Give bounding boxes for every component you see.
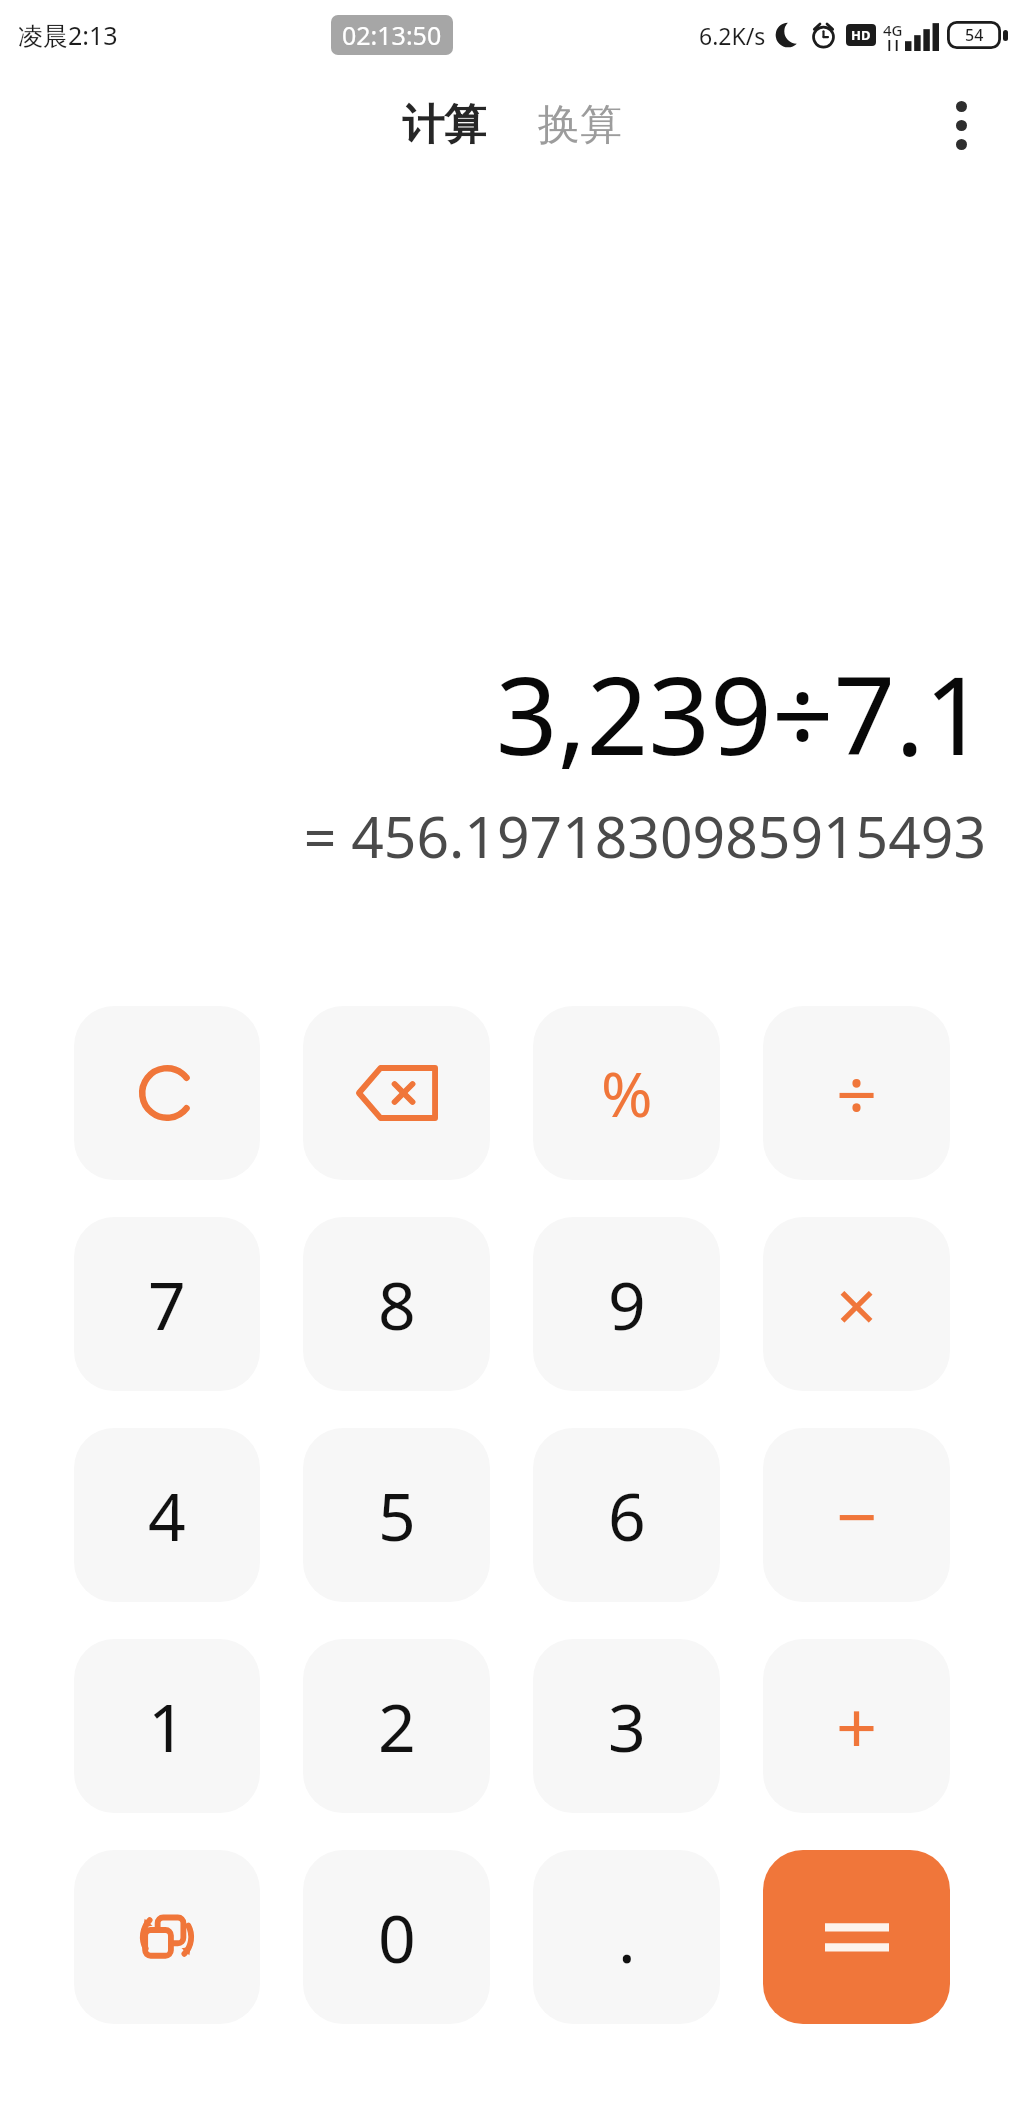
staticText: .	[618, 1892, 636, 1982]
button[interactable]: Clear	[74, 1006, 260, 1180]
button[interactable]: −	[763, 1428, 950, 1602]
staticText: 9	[608, 1259, 646, 1349]
staticText: 计算	[402, 99, 486, 152]
staticText: 4	[148, 1470, 186, 1560]
button[interactable]: 5	[303, 1428, 490, 1602]
staticText: %	[601, 1051, 653, 1135]
staticText: 8	[378, 1259, 416, 1349]
button[interactable]: 8	[303, 1217, 490, 1391]
button[interactable]: Unit conversion	[74, 1850, 260, 2024]
button[interactable]: 9	[533, 1217, 720, 1391]
button[interactable]: 7	[74, 1217, 260, 1391]
button[interactable]: 换算	[524, 89, 636, 162]
button[interactable]: 6	[533, 1428, 720, 1602]
button[interactable]: .	[533, 1850, 720, 2024]
button[interactable]: 1	[74, 1639, 260, 1813]
staticText: 7	[148, 1259, 186, 1349]
staticText: 凌晨2:13	[18, 18, 118, 52]
staticText: 4G	[883, 20, 903, 40]
staticText: HD	[851, 26, 871, 44]
button[interactable]: 0	[303, 1850, 490, 2024]
staticText: 3,239÷7.1	[495, 640, 986, 787]
staticText: 02:13:50	[342, 18, 442, 52]
button[interactable]: 3	[533, 1639, 720, 1813]
staticText: ×	[836, 1255, 878, 1353]
staticText: 0	[378, 1892, 416, 1982]
button[interactable]: +	[763, 1639, 950, 1813]
staticText: 5	[378, 1470, 416, 1560]
staticText: 6	[608, 1470, 646, 1560]
staticText: ÷	[836, 1044, 878, 1142]
staticText: 1	[148, 1681, 186, 1771]
staticText: 换算	[538, 99, 622, 152]
staticText: 3	[608, 1681, 646, 1771]
button[interactable]: Delete	[303, 1006, 490, 1180]
button[interactable]: %	[533, 1006, 720, 1180]
staticText: −	[836, 1466, 878, 1564]
staticText: = 456.1971830985915493	[303, 797, 986, 875]
button[interactable]: ÷	[763, 1006, 950, 1180]
button[interactable]: 2	[303, 1639, 490, 1813]
staticText: 2	[378, 1681, 416, 1771]
staticText: 6.2K/s	[699, 20, 766, 51]
button[interactable]: 计算	[388, 89, 500, 162]
button[interactable]: ×	[763, 1217, 950, 1391]
button[interactable]	[763, 1850, 950, 2024]
button[interactable]: More options	[918, 82, 1004, 168]
button[interactable]: 4	[74, 1428, 260, 1602]
staticText: +	[836, 1677, 878, 1775]
staticText: 54	[965, 24, 984, 46]
